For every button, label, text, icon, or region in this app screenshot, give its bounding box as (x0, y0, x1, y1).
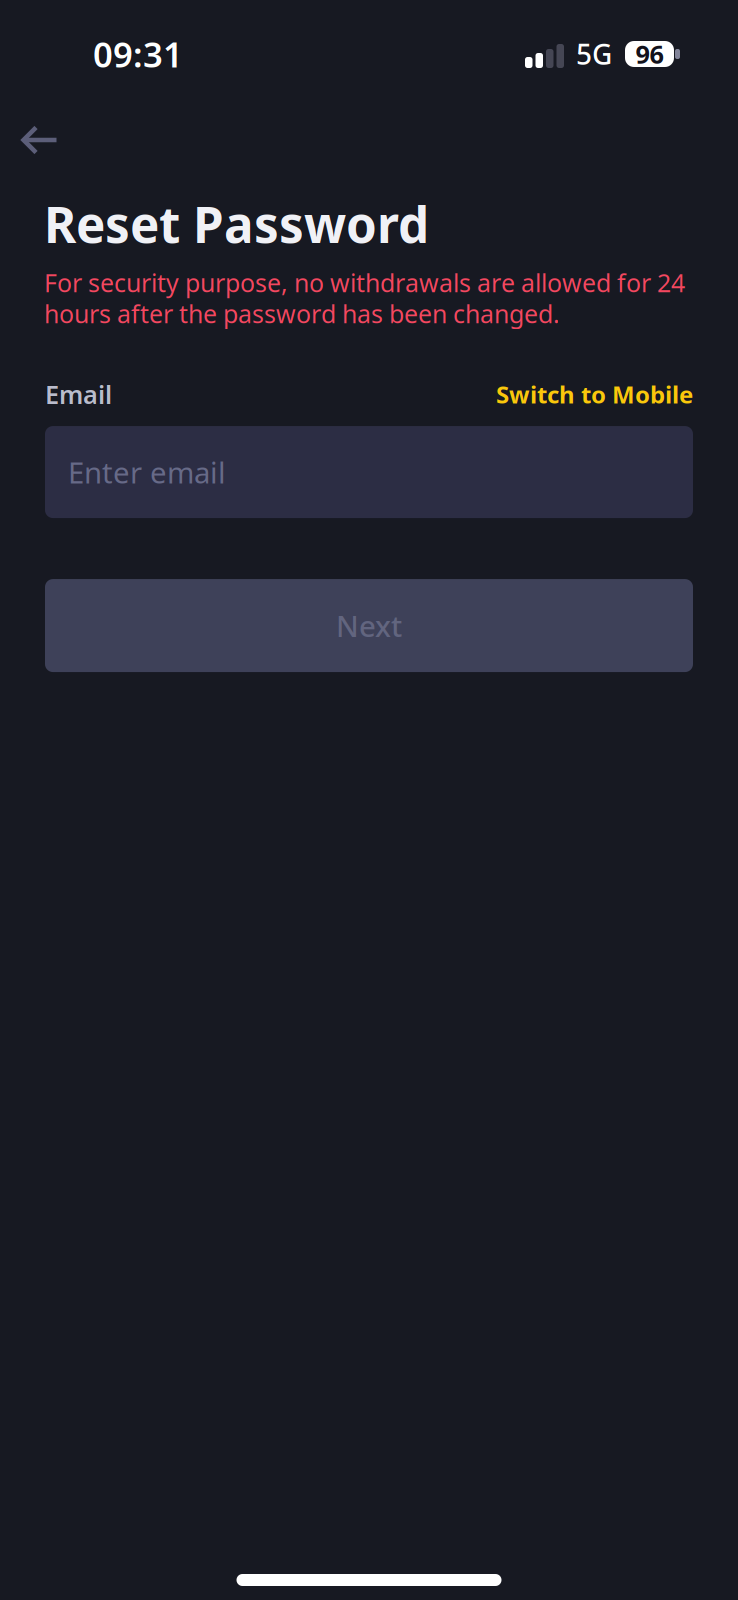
staticText: Email (45, 377, 112, 411)
button[interactable]: Back (0, 108, 86, 166)
staticText: Reset Password (44, 191, 429, 256)
staticText: Next (336, 606, 402, 645)
button[interactable]: Switch to Mobile (496, 378, 693, 410)
button[interactable]: Enter email (45, 426, 693, 518)
staticText: Enter email (68, 453, 226, 492)
button[interactable]: Next (45, 579, 693, 672)
staticText: 09:31 (93, 31, 183, 77)
staticText: 96 (635, 37, 663, 71)
staticText: For security purpose, no withdrawals are… (44, 265, 685, 330)
staticText: Switch to Mobile (496, 378, 693, 410)
staticText: 5G (576, 35, 612, 73)
